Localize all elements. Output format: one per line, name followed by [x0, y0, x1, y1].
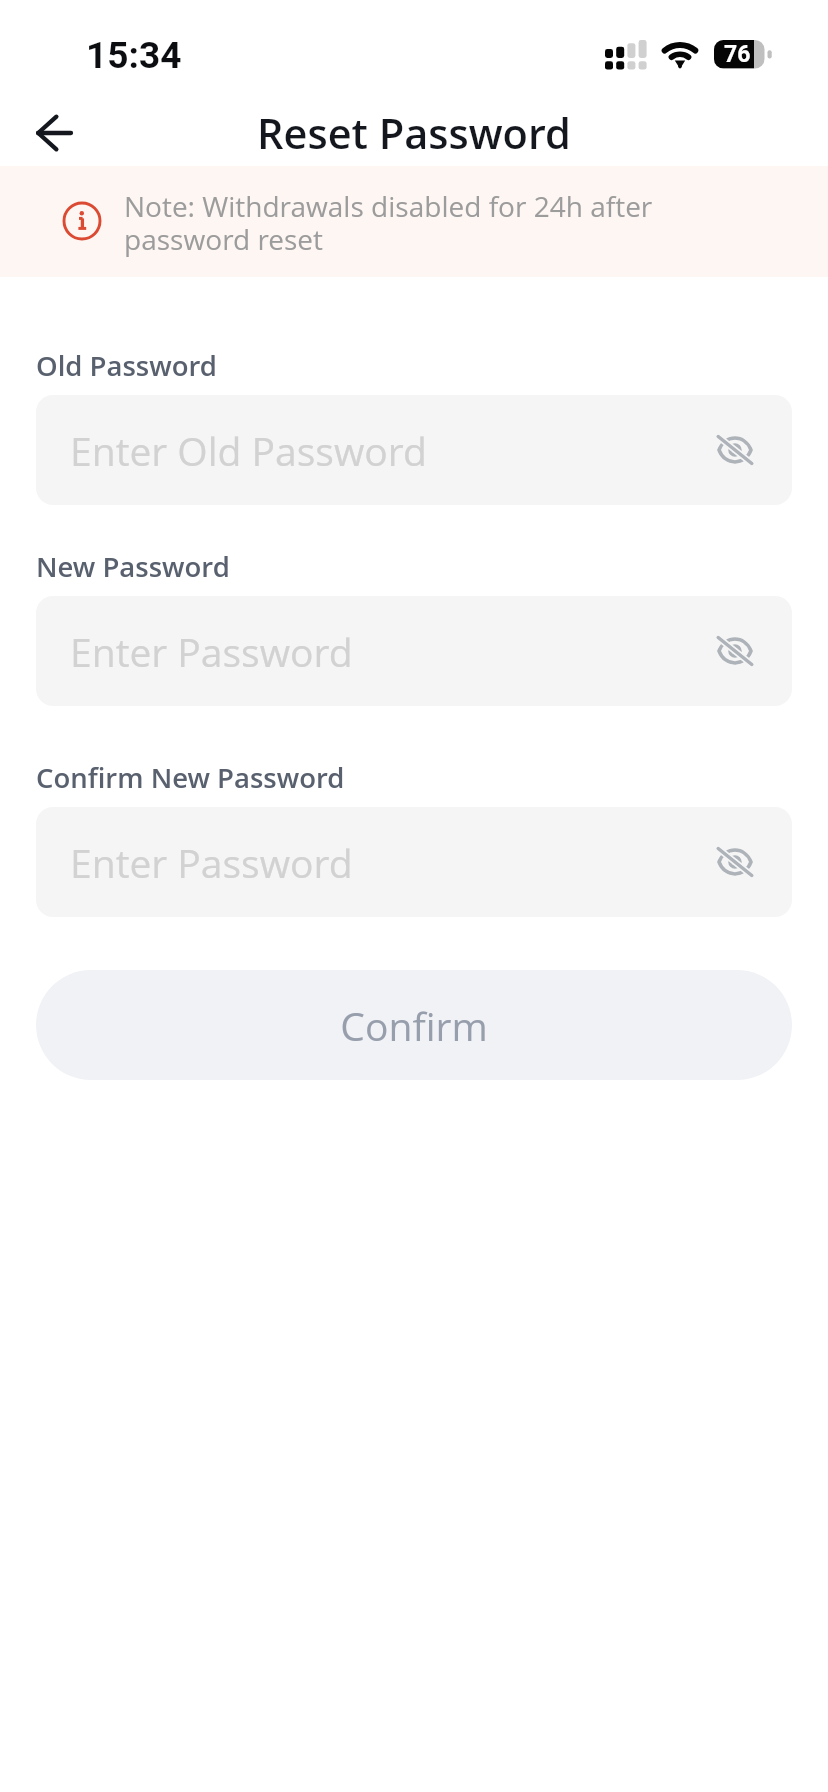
button[interactable]: Confirm [36, 970, 792, 1080]
staticText: Note: Withdrawals disabled for 24h after… [124, 187, 669, 258]
button[interactable]: Enter Password [36, 596, 792, 706]
staticText: Confirm [340, 999, 488, 1052]
button[interactable]: Show password [708, 624, 762, 678]
staticText: 15:34 [86, 34, 182, 77]
staticText: Enter Password [70, 625, 708, 678]
staticText: Old Password [36, 347, 217, 384]
button[interactable]: Back [17, 98, 91, 168]
staticText: New Password [36, 548, 230, 585]
staticText: 76 [724, 41, 751, 68]
staticText: Enter Password [70, 836, 708, 889]
staticText: Reset Password [257, 105, 571, 162]
staticText: Enter Old Password [70, 424, 708, 477]
button[interactable]: Old Password [0, 347, 828, 1080]
button[interactable]: Enter Old Password [36, 395, 792, 505]
button[interactable]: Show password [708, 423, 762, 477]
button[interactable]: Note: Withdrawals disabled for 24h after… [0, 166, 828, 277]
staticText: Confirm New Password [36, 759, 345, 796]
button[interactable]: Enter Password [36, 807, 792, 917]
button[interactable]: Show password [708, 835, 762, 889]
